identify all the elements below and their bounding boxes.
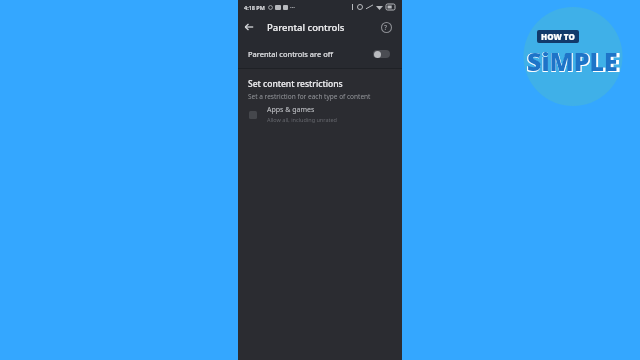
staticText: Apps & games: [267, 105, 315, 115]
staticText: ?: [384, 23, 388, 32]
button[interactable]: Back: [238, 16, 260, 38]
staticText: Set content restrictions: [248, 78, 343, 90]
staticText: 4:18 PM: [244, 4, 265, 11]
staticText: Parental controls: [267, 21, 345, 34]
staticText: ···: [290, 3, 296, 11]
staticText: SiMPLE: [526, 44, 621, 79]
staticText: Set a restriction for each type of conte…: [248, 92, 371, 101]
staticText: SiMPLE: [527, 44, 618, 78]
button[interactable]: Help: [375, 16, 397, 38]
staticText: HOW TO: [541, 31, 575, 42]
staticText: Allow all, including unrated: [267, 116, 337, 123]
staticText: Parental controls are off: [248, 49, 333, 59]
button[interactable]: Apps & games: [238, 101, 402, 127]
button[interactable]: Parental controls are off: [238, 40, 402, 68]
